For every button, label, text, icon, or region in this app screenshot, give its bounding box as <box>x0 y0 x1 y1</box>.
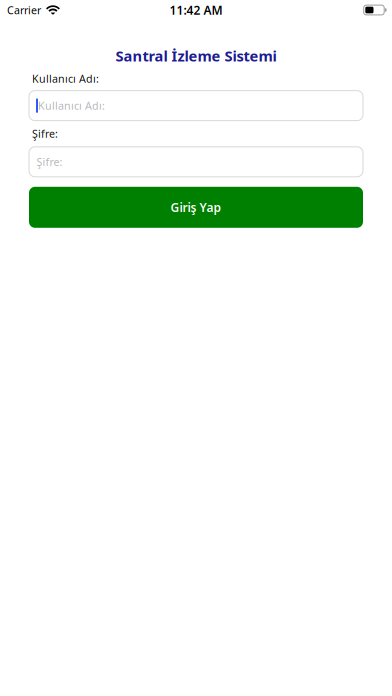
staticText: Şifre: <box>36 155 62 169</box>
staticText: Kullanıcı Adı: <box>32 71 99 86</box>
staticText: 11:42 AM <box>169 2 222 18</box>
staticText: Santral İzleme Sistemi <box>115 46 276 65</box>
staticText: Carrier <box>7 3 41 17</box>
button[interactable]: Kullanıcı Adı: <box>29 91 363 121</box>
button[interactable]: Şifre: <box>29 147 363 177</box>
button[interactable]: Giriş Yap <box>29 187 363 228</box>
staticText: Kullanıcı Adı: <box>38 99 105 113</box>
staticText: Şifre: <box>32 127 58 141</box>
staticText: Giriş Yap <box>170 199 221 215</box>
